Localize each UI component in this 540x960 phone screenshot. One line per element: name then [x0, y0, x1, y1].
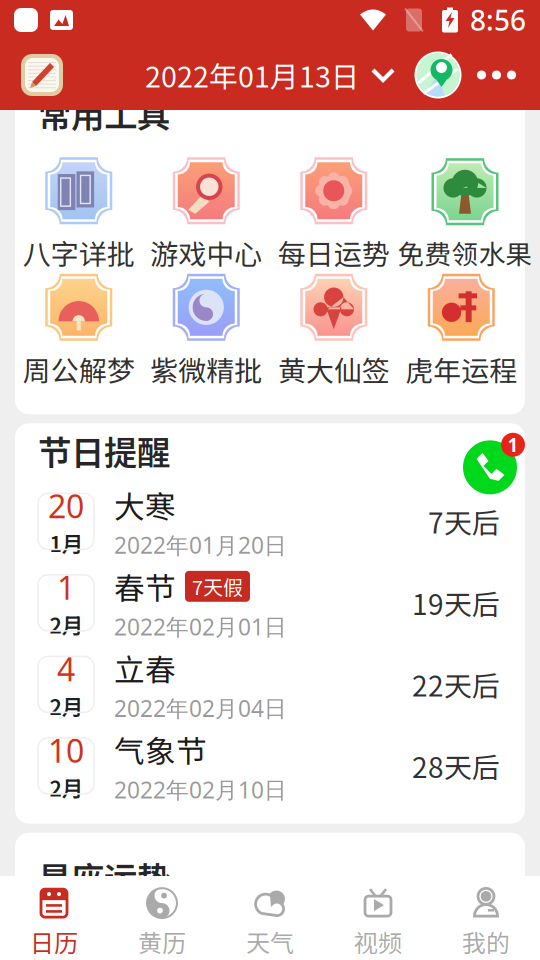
button[interactable]: 八字详批 [23, 157, 135, 273]
staticText: 黄历 [138, 924, 186, 959]
staticText: 日历 [30, 924, 78, 959]
staticText: 免费领水果 [397, 233, 532, 272]
staticText: 天气 [246, 924, 294, 959]
staticText: 10 [48, 729, 84, 772]
button[interactable]: 虎年运程 [405, 274, 517, 389]
button[interactable]: 日历 [0, 877, 108, 959]
button[interactable]: 20 [15, 481, 525, 562]
staticText: 虎年运程 [405, 349, 517, 389]
staticText: 4 [57, 648, 75, 690]
staticText: 7天后 [428, 501, 500, 542]
staticText: 20 [48, 485, 84, 527]
staticText: 2022年02月01日 [114, 611, 287, 642]
button[interactable]: 我的 [432, 877, 540, 959]
staticText: 2022年01月13日 [145, 54, 360, 96]
button[interactable]: Map [413, 50, 463, 100]
staticText: 2022年02月10日 [114, 774, 287, 805]
button[interactable]: 4 [15, 644, 525, 725]
staticText: 2022年01月20日 [114, 530, 287, 560]
button[interactable]: 周公解梦 [23, 274, 135, 389]
button[interactable]: 免费领水果 [397, 158, 525, 272]
staticText: 大寒 [114, 483, 176, 527]
button[interactable]: 黄历 [108, 877, 216, 959]
staticText: 1 [507, 432, 518, 457]
staticText: 2月 [49, 690, 82, 721]
button[interactable]: 1 [15, 562, 525, 644]
button[interactable]: Notes [13, 46, 71, 104]
staticText: 1 [57, 566, 75, 609]
button[interactable]: 2022年01月13日 [145, 38, 395, 112]
staticText: 1月 [49, 527, 82, 558]
staticText: 每日运势 [278, 232, 390, 273]
button[interactable]: More [463, 50, 516, 99]
staticText: 22天后 [412, 664, 500, 705]
button[interactable]: 紫微精批 [150, 274, 262, 389]
staticText: 视频 [354, 924, 402, 959]
button[interactable]: 每日运势 [278, 157, 390, 273]
staticText: 2月 [49, 609, 82, 640]
button[interactable]: 黄大仙签 [278, 274, 390, 389]
staticText: 我的 [462, 924, 510, 959]
button[interactable]: 视频 [324, 877, 432, 959]
staticText: 紫微精批 [150, 349, 262, 389]
staticText: 春节 [114, 564, 176, 608]
staticText: 2022年02月04日 [114, 693, 287, 723]
staticText: 2月 [49, 772, 82, 803]
staticText: 常用工具 [38, 89, 170, 137]
staticText: 19天后 [412, 583, 500, 623]
button[interactable]: 游戏中心 [150, 157, 262, 273]
staticText: 游戏中心 [150, 232, 262, 273]
staticText: 星座运势 [38, 853, 170, 901]
staticText: 节日提醒 [38, 426, 170, 475]
staticText: 立春 [114, 646, 176, 690]
staticText: 黄大仙签 [278, 349, 390, 389]
button[interactable]: 天气 [216, 877, 324, 959]
staticText: 周公解梦 [23, 349, 135, 389]
staticText: 7天假 [192, 572, 243, 601]
staticText: 28天后 [412, 746, 500, 786]
staticText: 8:56 [470, 1, 526, 39]
button[interactable]: 10 [15, 725, 525, 807]
staticText: 气象节 [114, 727, 207, 771]
staticText: 八字详批 [23, 232, 135, 273]
button[interactable]: Call [463, 432, 525, 494]
